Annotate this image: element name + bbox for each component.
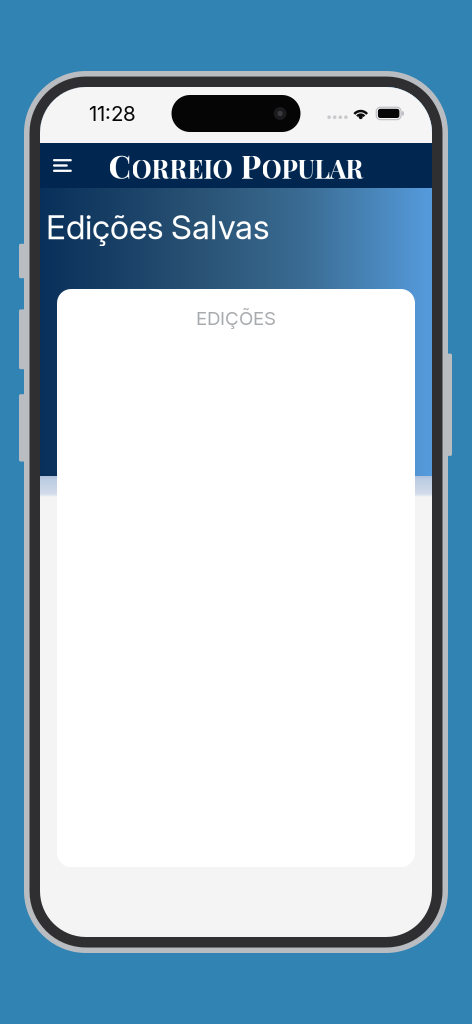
staticText: Salvas [171, 207, 270, 247]
button[interactable]: Menu [53, 143, 91, 188]
staticText: Edições [46, 207, 164, 247]
staticText: EDIÇÕES [196, 307, 276, 330]
staticText: 11:28 [89, 101, 136, 126]
staticText: OPULAR [261, 151, 363, 185]
staticText: ORREIO [131, 151, 232, 185]
staticText: C [108, 144, 131, 187]
staticText: P [240, 144, 261, 187]
